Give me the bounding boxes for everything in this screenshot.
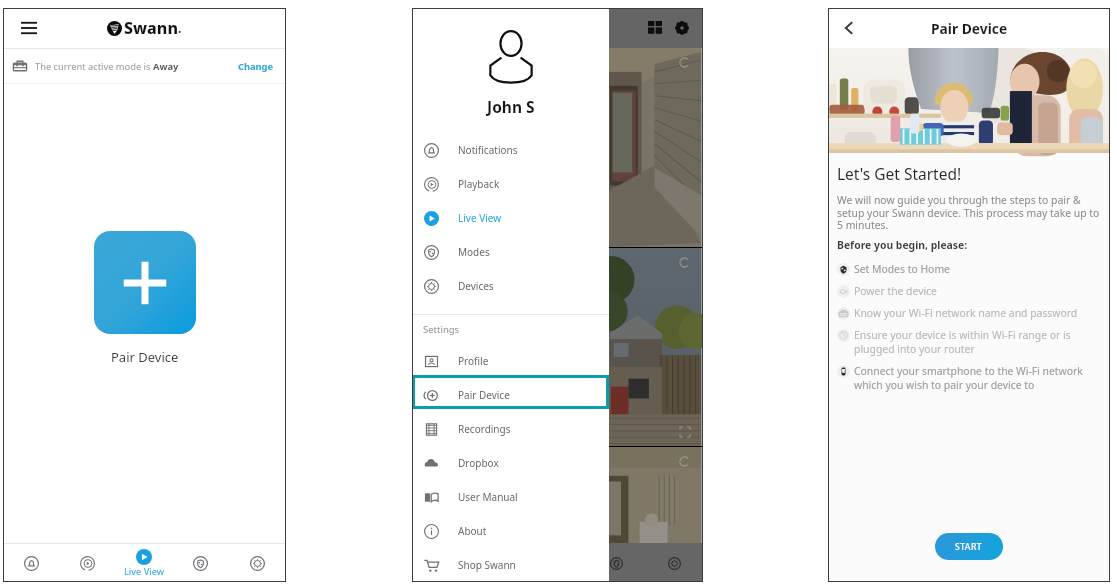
button[interactable]: User Manual <box>412 480 609 514</box>
button[interactable]: Notifications <box>412 133 609 167</box>
staticText: Live View <box>458 211 502 225</box>
button[interactable]: Menu <box>15 14 43 42</box>
staticText: Away <box>153 60 179 73</box>
button[interactable]: Playback <box>412 167 609 201</box>
button[interactable]: Grid view <box>648 21 662 35</box>
button[interactable]: Shop Swann <box>412 548 609 582</box>
staticText: Playback <box>458 177 500 191</box>
staticText: John S <box>487 96 535 117</box>
staticText: Change <box>238 60 274 73</box>
button[interactable]: Devices <box>412 269 609 303</box>
button[interactable]: Settings <box>229 544 286 582</box>
staticText: Live View <box>124 565 164 578</box>
button[interactable]: About <box>412 514 609 548</box>
button[interactable]: Live View <box>115 544 172 582</box>
button[interactable]: Live View <box>412 201 609 235</box>
staticText: We will now guide you through the steps … <box>837 193 1103 232</box>
staticText: The current active mode is <box>35 60 153 73</box>
button[interactable]: Notifications <box>3 544 59 582</box>
staticText: Pair Device <box>931 19 1008 38</box>
button[interactable]: Profile <box>412 344 609 378</box>
staticText: Set Modes to Home <box>854 262 950 276</box>
button[interactable]: START <box>935 533 1003 560</box>
button[interactable]: Settings <box>675 21 689 35</box>
button[interactable]: Recordings <box>412 412 609 446</box>
staticText: Profile <box>458 354 489 368</box>
button[interactable]: Modes <box>172 544 229 582</box>
button[interactable]: Modes <box>610 557 623 570</box>
button[interactable]: Settings <box>668 557 681 570</box>
staticText: Recordings <box>458 422 511 436</box>
staticText: Notifications <box>458 143 518 157</box>
staticText: Pair Device <box>111 348 179 366</box>
button[interactable] <box>94 231 196 334</box>
staticText: About <box>458 524 487 538</box>
staticText: . <box>178 20 182 36</box>
staticText: Dropbox <box>458 456 499 470</box>
staticText: START <box>955 541 983 553</box>
button[interactable]: Modes <box>412 235 609 269</box>
staticText: Power the device <box>854 284 937 298</box>
staticText: Pair Device <box>458 388 510 402</box>
button[interactable]: Change <box>236 55 276 78</box>
staticText: Ensure your device is within Wi-Fi range… <box>854 328 1103 356</box>
button[interactable]: Pair Device <box>412 378 609 412</box>
staticText: User Manual <box>458 490 518 504</box>
staticText: Shop Swann <box>458 558 516 572</box>
staticText: Settings <box>423 323 460 336</box>
staticText: Swann <box>124 17 178 39</box>
button[interactable]: Dropbox <box>412 446 609 480</box>
staticText: Connect your smartphone to the Wi-Fi net… <box>854 364 1103 392</box>
staticText: Modes <box>458 245 490 259</box>
staticText: Know your Wi-Fi network name and passwor… <box>854 306 1078 320</box>
staticText: Devices <box>458 279 494 293</box>
staticText: Let's Get Started! <box>837 163 962 184</box>
staticText: Before you begin, please: <box>837 238 968 252</box>
button[interactable]: Back <box>840 19 858 37</box>
button[interactable]: Playback <box>59 544 115 582</box>
